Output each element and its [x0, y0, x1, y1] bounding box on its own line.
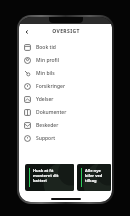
button[interactable]: Dokumenter — [19, 106, 112, 119]
staticText: Min bils — [36, 70, 55, 77]
staticText: Alle nye biler ved tilbag — [85, 168, 103, 183]
button[interactable]: Husk at få monteret dit batteri — [25, 164, 74, 191]
staticText: Husk at få monteret dit batteri — [33, 168, 59, 183]
button[interactable]: Forsikringer — [19, 80, 112, 93]
staticText: Ydelser — [36, 96, 54, 103]
button[interactable]: Back — [22, 27, 31, 36]
staticText: Min profil — [36, 57, 60, 64]
button[interactable]: Ydelser — [19, 93, 112, 106]
button[interactable]: Min profil — [19, 54, 112, 67]
staticText: Beskeder — [36, 122, 59, 129]
staticText: Support — [36, 135, 56, 142]
button[interactable]: Alle nye biler ved tilbag — [77, 164, 111, 191]
staticText: OVERSIGT — [52, 28, 80, 35]
staticText: Forsikringer — [36, 83, 66, 90]
button[interactable]: Book tid — [19, 41, 112, 54]
button[interactable]: Support — [19, 132, 112, 145]
button[interactable]: Beskeder — [19, 119, 112, 132]
staticText: Book tid — [36, 44, 56, 51]
staticText: Dokumenter — [36, 109, 67, 116]
button[interactable]: Min bils — [19, 67, 112, 80]
